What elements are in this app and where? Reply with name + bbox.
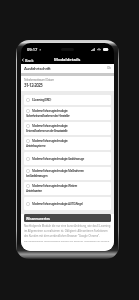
button[interactable]: Moderne Fahrzeugtechnologie: bbox=[24, 137, 111, 150]
staticText: Moderne Fahrzeugtechnologie: bbox=[32, 139, 68, 143]
staticText: Erstmaßnahmen an der Einsatzstelle bbox=[26, 129, 68, 133]
button[interactable]: Moderne Fahrzeugtechnologie: Gasfahrzeug… bbox=[24, 152, 111, 165]
staticText: Moderne Fahrzeugtechnologie: Maßnahmen bbox=[32, 169, 84, 173]
staticText: Antriebsarten bbox=[26, 189, 42, 193]
staticText: Modaldetails bbox=[54, 57, 81, 63]
staticText: Moderne Fahrzeugtechnologie: Weitere bbox=[32, 184, 77, 188]
staticText: 09:17 bbox=[27, 47, 38, 52]
staticText: Moderne Fahrzeugtechnologie: Gasfahrzeug… bbox=[32, 157, 84, 161]
staticText: Die dargestellten Informationen wurden a… bbox=[24, 239, 110, 242]
staticText: Ok bbox=[107, 66, 111, 70]
staticText: Nachfolgende Module die nur eine kurze A… bbox=[24, 224, 111, 237]
staticText: 31-12-2025 bbox=[24, 82, 43, 88]
button[interactable]: Moderne Fahrzeugtechnologie: bbox=[24, 107, 111, 120]
staticText: Sicherheitsmaßnahmen der Hersteller bbox=[26, 114, 70, 118]
staticText: bei Gasfahrzeugen bbox=[26, 174, 48, 178]
button[interactable]: Wissenswertes bbox=[24, 214, 111, 222]
staticText: Moderne Fahrzeugtechnologie: bbox=[32, 124, 68, 128]
staticText: Wissenswertes bbox=[26, 216, 50, 220]
button[interactable]: Moderne Fahrzeugtechnologie: Maßnahmen bbox=[24, 167, 111, 180]
button[interactable]: Moderne Fahrzeugtechnologie: AUTO-Riegel bbox=[24, 197, 111, 210]
staticText: Moderne Fahrzeugtechnologie: bbox=[32, 109, 68, 113]
staticText: Ausfahrtschrift bbox=[24, 66, 51, 72]
staticText: Back bbox=[25, 58, 34, 63]
staticText: Antriebssysteme bbox=[26, 144, 46, 148]
staticText: Teilnahmezeitraum / Datum bbox=[24, 78, 54, 82]
button[interactable]: E-Learning (DRD) bbox=[24, 95, 111, 105]
button[interactable]: Moderne Fahrzeugtechnologie: bbox=[24, 122, 111, 135]
button[interactable]: Back bbox=[21, 56, 36, 64]
button[interactable]: Moderne Fahrzeugtechnologie: Weitere bbox=[24, 182, 111, 195]
staticText: Moderne Fahrzeugtechnologie: AUTO-Riegel bbox=[32, 202, 83, 206]
button[interactable]: Ausfahrtschrift bbox=[21, 64, 114, 73]
staticText: E-Learning (DRD) bbox=[32, 98, 51, 102]
